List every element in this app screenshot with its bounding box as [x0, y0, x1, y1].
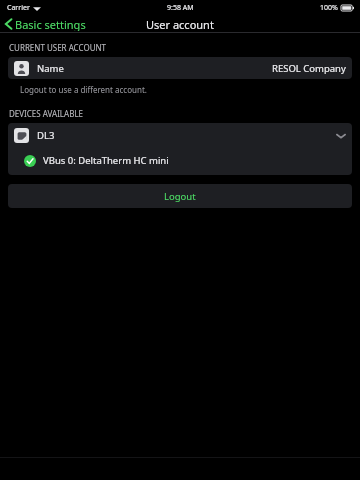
staticText: Carrier — [7, 3, 30, 13]
button[interactable]: Logout — [8, 184, 352, 208]
staticText: CURRENT USER ACCOUNT — [9, 42, 107, 53]
staticText: Name — [37, 62, 64, 75]
other: Collapse device list — [336, 133, 346, 139]
button[interactable]: DL3 — [8, 123, 352, 148]
staticText: Logout — [164, 190, 196, 203]
staticText: DL3 — [37, 129, 55, 142]
button[interactable]: VBus 0: DeltaTherm HC mini — [8, 148, 352, 173]
button[interactable]: Basic settings — [0, 15, 92, 33]
staticText: Basic settings — [15, 17, 86, 31]
staticText: 100% — [320, 3, 338, 13]
staticText: RESOL Company — [272, 62, 346, 75]
staticText: 9:58 AM — [167, 3, 194, 13]
staticText: VBus 0: DeltaTherm HC mini — [43, 154, 169, 167]
button[interactable]: Name — [8, 57, 352, 79]
staticText: DEVICES AVAILABLE — [9, 108, 84, 119]
staticText: User account — [146, 17, 214, 32]
staticText: Logout to use a different account. — [20, 84, 147, 95]
